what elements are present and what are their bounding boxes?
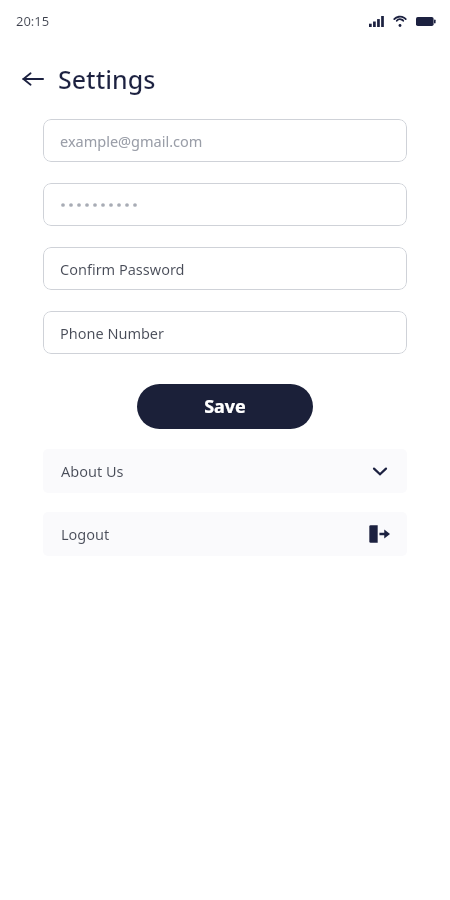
staticText: Phone Number bbox=[60, 323, 165, 343]
button[interactable]: example@gmail.com bbox=[43, 119, 407, 162]
staticText: 20:15 bbox=[16, 12, 50, 30]
staticText: Settings bbox=[58, 62, 156, 96]
button[interactable]: Logout bbox=[43, 512, 407, 556]
staticText: Logout bbox=[61, 524, 110, 544]
button[interactable]: Back bbox=[16, 62, 50, 96]
staticText: Confirm Password bbox=[60, 259, 185, 279]
button[interactable]: Expand About Us bbox=[43, 449, 407, 493]
staticText: Save bbox=[204, 394, 246, 419]
button[interactable] bbox=[43, 183, 407, 226]
button[interactable]: Save bbox=[137, 384, 313, 429]
staticText: example@gmail.com bbox=[60, 131, 203, 151]
staticText: About Us bbox=[61, 461, 124, 481]
button[interactable]: Confirm Password bbox=[43, 247, 407, 290]
button[interactable]: Phone Number bbox=[43, 311, 407, 354]
